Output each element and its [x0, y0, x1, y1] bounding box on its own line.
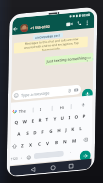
staticText: I [37, 106, 44, 113]
button[interactable] [80, 102, 87, 109]
button[interactable] [28, 165, 38, 175]
button[interactable]: Y [50, 114, 59, 123]
button[interactable]: , [18, 153, 25, 160]
button[interactable]: D [30, 127, 40, 137]
button[interactable]: Z [18, 141, 27, 150]
button[interactable]: T [42, 115, 51, 124]
button[interactable]: The [12, 100, 34, 121]
button[interactable]: O [71, 112, 81, 122]
button[interactable] [25, 154, 33, 162]
button[interactable] [11, 107, 19, 115]
button[interactable]: C [35, 139, 44, 148]
button[interactable] [11, 24, 21, 34]
button[interactable]: K [68, 124, 77, 133]
staticText: 10:08 [79, 8, 92, 21]
button[interactable]: M [69, 135, 80, 146]
button[interactable]: ?123 [9, 153, 20, 164]
button[interactable]: Messages to this chat and calls are now … [8, 3, 93, 87]
button[interactable] [75, 18, 85, 28]
button[interactable]: G [46, 126, 56, 136]
button[interactable]: L [76, 124, 85, 133]
button[interactable] [80, 135, 91, 146]
staticText: Type a message [18, 77, 52, 111]
button[interactable]: N [60, 136, 70, 146]
button[interactable]: Hi [51, 96, 73, 118]
button[interactable]: Type a message [9, 55, 84, 130]
button[interactable]: V [43, 138, 52, 147]
button[interactable]: P [79, 111, 88, 120]
button[interactable] [16, 20, 32, 36]
button[interactable]: Just texting something [40, 30, 98, 88]
button[interactable]: . [67, 148, 74, 155]
button[interactable]: Q [11, 117, 21, 127]
button[interactable] [66, 161, 76, 171]
staticText: Just texting something [44, 37, 89, 82]
button[interactable]: S [23, 128, 32, 137]
button[interactable]: I [65, 113, 73, 121]
button[interactable] [74, 145, 96, 167]
button[interactable]: H [54, 125, 64, 135]
button[interactable] [64, 18, 76, 30]
button[interactable] [48, 163, 58, 173]
button[interactable]: J [62, 125, 70, 133]
button[interactable]: B [52, 138, 61, 147]
staticText: The [16, 105, 29, 118]
button[interactable]: A [14, 129, 24, 139]
staticText: Hi [57, 102, 67, 112]
button[interactable]: R [35, 115, 44, 124]
staticText: 10:17 [84, 53, 95, 64]
button[interactable]: X [26, 139, 36, 149]
staticText: Messages to this chat and calls are now … [18, 12, 84, 78]
button[interactable]: +1 555-0102 [28, 15, 53, 39]
button[interactable] [10, 141, 20, 151]
button[interactable] [76, 83, 98, 105]
button[interactable]: U [57, 113, 67, 123]
button[interactable] [31, 137, 67, 173]
button[interactable]: F [38, 127, 47, 136]
button[interactable]: E [28, 116, 37, 125]
button[interactable] [84, 19, 91, 26]
staticText: 4 NOVEMBER 2017 [33, 22, 63, 52]
button[interactable]: I [30, 98, 52, 120]
button[interactable]: W [19, 116, 30, 127]
